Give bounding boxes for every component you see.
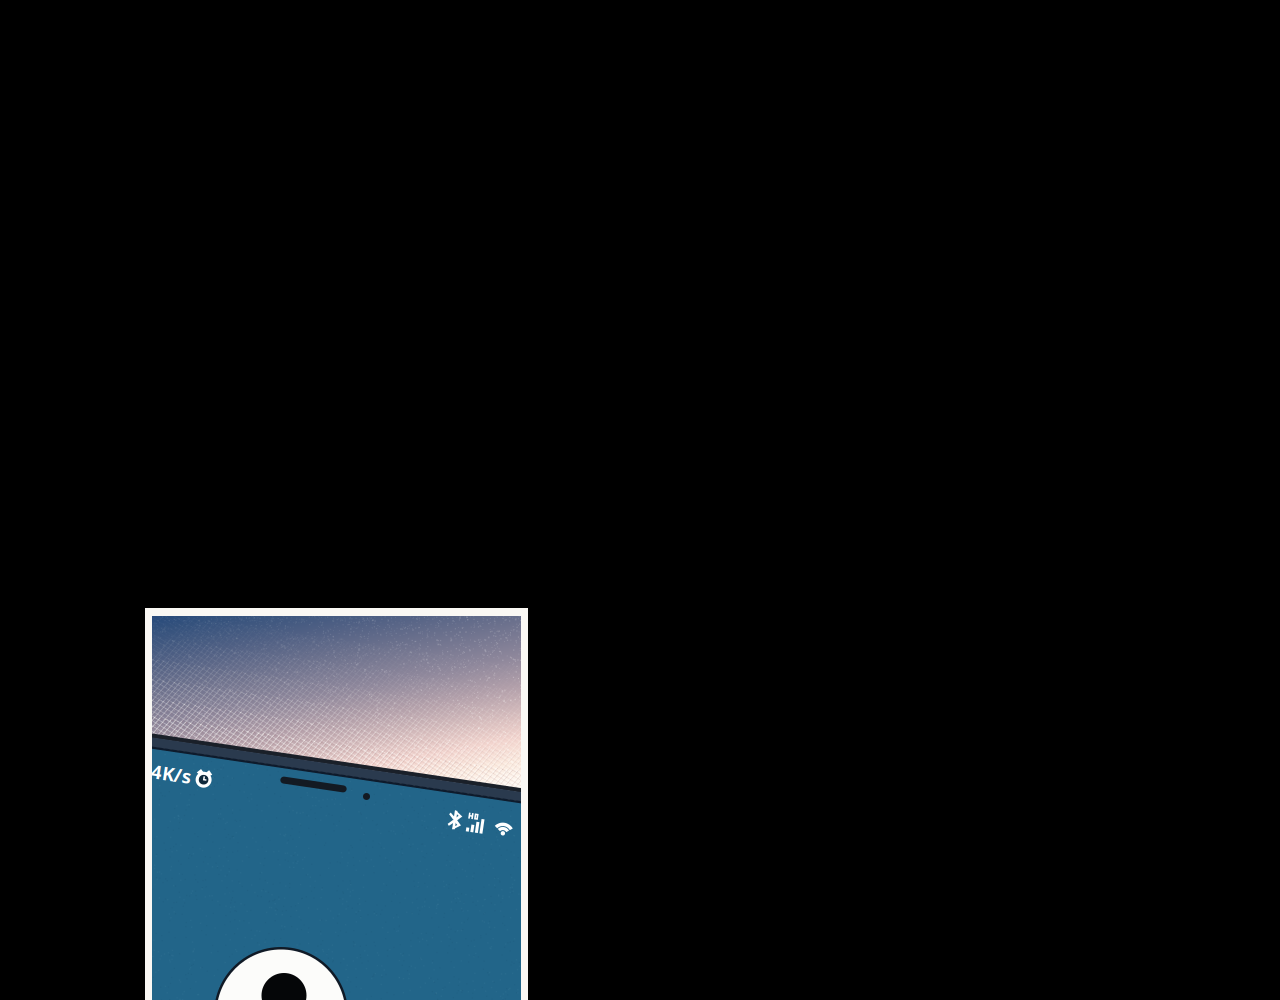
staticText: 4K/s xyxy=(151,763,191,788)
